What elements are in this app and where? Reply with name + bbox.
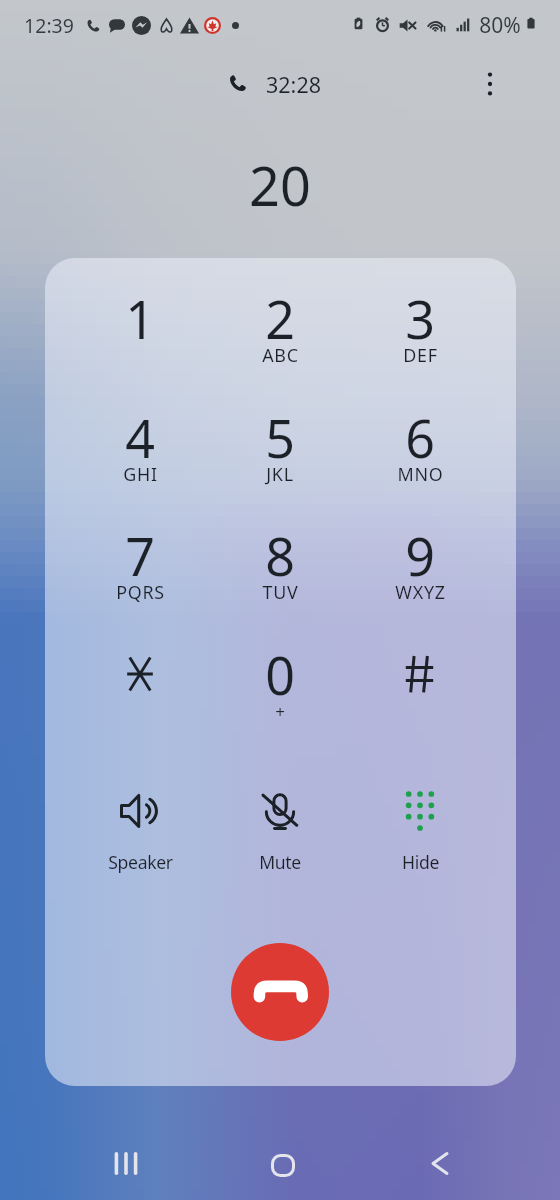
button[interactable]: 1 xyxy=(70,278,210,396)
button[interactable]: 0 xyxy=(210,634,350,752)
staticText: Speaker xyxy=(108,850,173,874)
button[interactable]: 5 xyxy=(210,397,350,515)
button[interactable]: 3 xyxy=(350,278,490,396)
button[interactable]: 4 xyxy=(70,397,210,515)
button[interactable]: 9 xyxy=(350,515,490,633)
staticText: 7 xyxy=(125,520,155,590)
button[interactable]: 2 xyxy=(210,278,350,396)
other: pound xyxy=(400,654,440,694)
staticText: Mute xyxy=(259,850,301,874)
button[interactable]: More options xyxy=(466,60,514,108)
staticText: GHI xyxy=(123,462,158,486)
button[interactable]: Recent apps xyxy=(96,1126,156,1186)
staticText: 80% xyxy=(479,11,521,40)
button[interactable]: star xyxy=(70,634,210,752)
button[interactable]: End call xyxy=(231,943,329,1041)
button[interactable]: 6 xyxy=(350,397,490,515)
staticText: ABC xyxy=(262,343,299,367)
staticText: 8 xyxy=(265,520,295,590)
button[interactable]: Speaker xyxy=(70,773,210,883)
staticText: + xyxy=(275,700,286,723)
staticText: 3 xyxy=(405,283,435,353)
staticText: PQRS xyxy=(116,580,165,604)
staticText: 12:39 xyxy=(24,12,74,39)
staticText: 1 xyxy=(125,283,155,353)
staticText: 32:28 xyxy=(266,70,321,99)
staticText: 2 xyxy=(265,283,295,353)
staticText: 9 xyxy=(405,520,435,590)
staticText: 4 xyxy=(125,402,155,472)
button[interactable]: Back xyxy=(409,1126,469,1186)
other: star xyxy=(121,655,159,693)
button[interactable]: Hide xyxy=(350,773,490,883)
button[interactable]: pound xyxy=(350,634,490,752)
staticText: DEF xyxy=(403,343,438,367)
staticText: MNO xyxy=(397,462,444,486)
staticText: Hide xyxy=(402,850,439,874)
button[interactable]: Mute xyxy=(210,773,350,883)
staticText: 0 xyxy=(265,639,295,709)
button[interactable]: 7 xyxy=(70,515,210,633)
staticText: TUV xyxy=(262,580,299,604)
staticText: JKL xyxy=(266,462,294,486)
staticText: 6 xyxy=(405,402,435,472)
staticText: WXYZ xyxy=(395,580,446,604)
staticText: 20 xyxy=(249,148,311,222)
button[interactable]: Home xyxy=(253,1126,313,1186)
staticText: 5 xyxy=(265,402,295,472)
button[interactable]: 8 xyxy=(210,515,350,633)
